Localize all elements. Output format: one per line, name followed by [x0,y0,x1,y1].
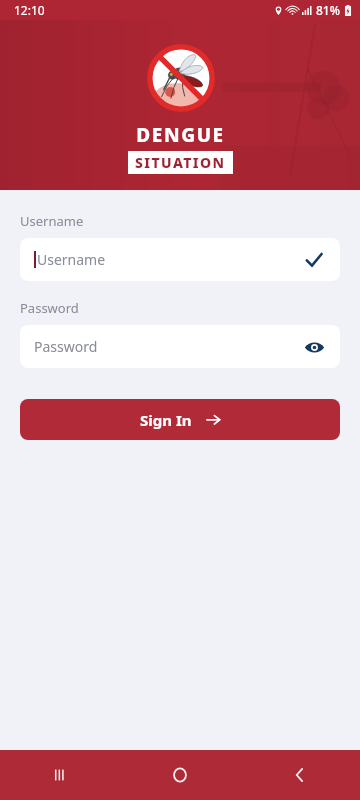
button[interactable]: Show password [302,335,326,359]
button[interactable]: Back [240,750,360,800]
staticText: Password [20,299,79,317]
button[interactable]: Username [20,238,340,281]
staticText: Username [20,212,84,230]
button[interactable]: Recent apps [0,750,120,800]
staticText: Sign In [140,410,192,430]
staticText: Password [34,337,302,356]
button[interactable]: Sign In [20,399,340,440]
button[interactable]: Home [120,750,240,800]
staticText: SITUATION [135,153,226,172]
button[interactable]: Username valid [302,248,326,272]
button[interactable]: Password [20,325,340,368]
staticText: 81% [316,2,340,18]
staticText: 12:10 [14,2,45,18]
staticText: DENGUE [136,122,225,148]
staticText: Username [37,250,302,269]
